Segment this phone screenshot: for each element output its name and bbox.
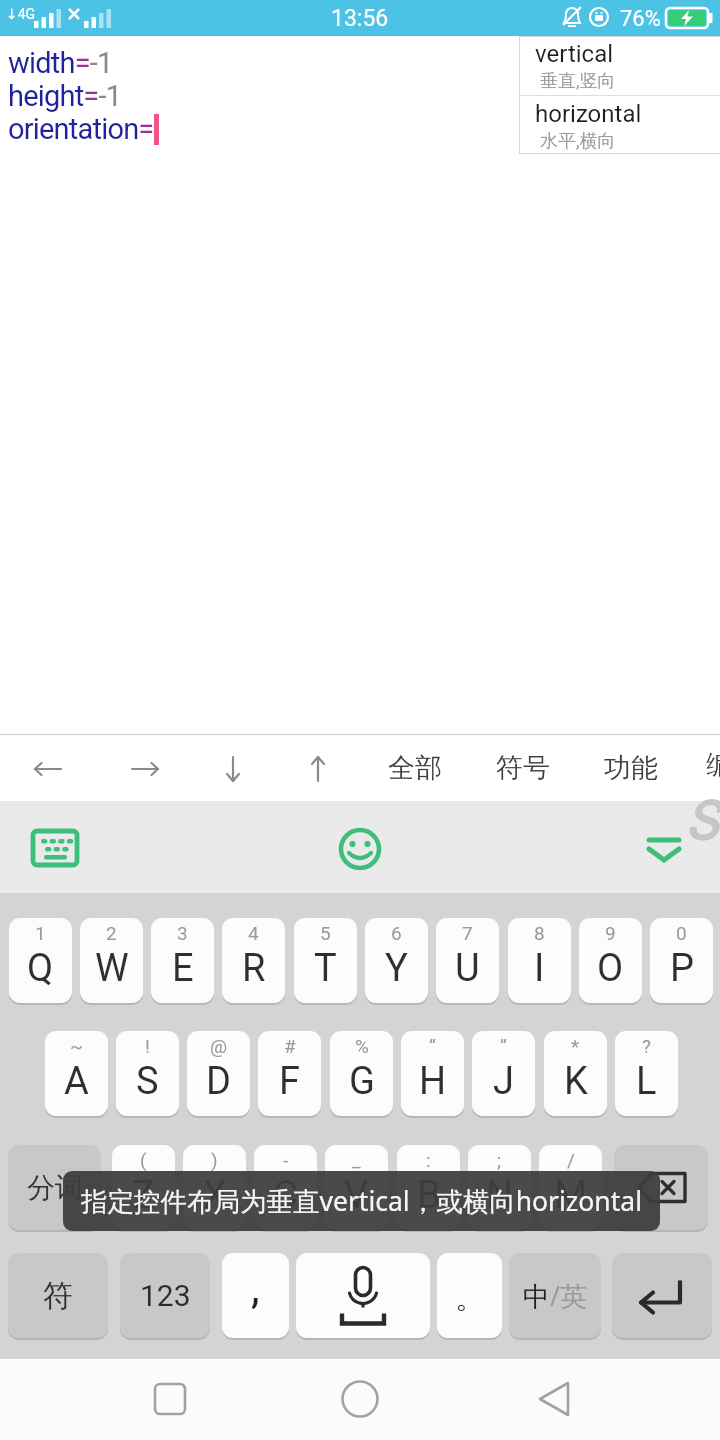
button[interactable]: 0: [650, 918, 713, 1003]
button[interactable]: [612, 1253, 712, 1338]
button[interactable]: 2: [80, 918, 143, 1003]
button[interactable]: 1: [9, 918, 72, 1003]
staticText: G: [349, 1059, 375, 1104]
staticText: R: [242, 946, 266, 991]
button[interactable]: 9: [579, 918, 642, 1003]
staticText: S: [136, 1059, 159, 1104]
staticText: 编: [706, 748, 720, 782]
staticText: 5: [320, 922, 331, 944]
staticText: 123: [140, 1278, 191, 1313]
button[interactable]: ~: [45, 1031, 108, 1116]
button[interactable]: [288, 740, 348, 796]
button[interactable]: [634, 815, 694, 879]
staticText: Z: [132, 1173, 155, 1218]
staticText: #: [284, 1035, 296, 1057]
button[interactable]: 6: [365, 918, 428, 1003]
button[interactable]: [614, 1145, 708, 1230]
staticText: *: [571, 1035, 580, 1057]
button[interactable]: 8: [508, 918, 571, 1003]
staticText: _: [352, 1149, 361, 1171]
button[interactable]: _: [325, 1145, 388, 1230]
staticText: N: [486, 1173, 514, 1218]
staticText: 1: [35, 922, 46, 944]
staticText: 4: [248, 922, 259, 944]
button[interactable]: *: [544, 1031, 607, 1116]
button[interactable]: [296, 1253, 430, 1338]
staticText: ”: [500, 1035, 507, 1057]
button[interactable]: 全部: [380, 742, 450, 794]
staticText: F: [279, 1059, 301, 1104]
button[interactable]: ”: [472, 1031, 535, 1116]
button[interactable]: #: [258, 1031, 321, 1116]
button[interactable]: “: [401, 1031, 464, 1116]
button[interactable]: :: [397, 1145, 460, 1230]
staticText: W: [95, 946, 129, 991]
button[interactable]: 符号: [488, 742, 558, 794]
staticText: 0: [676, 922, 687, 944]
button[interactable]: [525, 1369, 585, 1429]
button[interactable]: [140, 1369, 200, 1429]
button[interactable]: !: [116, 1031, 179, 1116]
button[interactable]: -: [254, 1145, 317, 1230]
staticText: 符: [43, 1277, 73, 1315]
staticText: L: [636, 1059, 657, 1104]
button[interactable]: 。: [437, 1253, 502, 1338]
button[interactable]: [18, 740, 78, 796]
button[interactable]: /: [539, 1145, 602, 1230]
staticText: 。: [455, 1279, 485, 1317]
button[interactable]: 分词: [8, 1145, 101, 1230]
staticText: 分词: [27, 1170, 83, 1205]
button[interactable]: @: [187, 1031, 250, 1116]
staticText: vertical: [535, 40, 614, 68]
button[interactable]: 5: [294, 918, 357, 1003]
staticText: X: [203, 1173, 227, 1218]
staticText: A: [64, 1059, 89, 1104]
staticText: 2: [106, 922, 117, 944]
staticText: T: [314, 946, 337, 991]
staticText: B: [417, 1173, 441, 1218]
staticText: width=-1: [8, 46, 113, 80]
button[interactable]: 123: [120, 1253, 210, 1338]
button[interactable]: %: [330, 1031, 393, 1116]
button[interactable]: ;: [468, 1145, 531, 1230]
button[interactable]: (: [112, 1145, 175, 1230]
button[interactable]: vertical: [519, 36, 720, 95]
button[interactable]: ): [183, 1145, 246, 1230]
staticText: 全部: [388, 751, 442, 785]
staticText: D: [206, 1059, 231, 1104]
button[interactable]: 中/英: [509, 1253, 601, 1338]
button[interactable]: 3: [151, 918, 214, 1003]
button[interactable]: 7: [436, 918, 499, 1003]
button[interactable]: [14, 815, 90, 879]
staticText: /: [567, 1149, 575, 1171]
staticText: 8: [534, 922, 545, 944]
button[interactable]: [115, 740, 175, 796]
staticText: “: [429, 1035, 436, 1057]
button[interactable]: ,: [222, 1253, 289, 1338]
staticText: 9: [605, 922, 616, 944]
staticText: ↓4G: [6, 6, 36, 22]
button[interactable]: 功能: [596, 742, 666, 794]
button[interactable]: 符: [8, 1253, 108, 1338]
staticText: 13:56: [331, 5, 389, 32]
staticText: ;: [497, 1149, 502, 1171]
button[interactable]: ?: [615, 1031, 678, 1116]
staticText: orientation=: [8, 112, 154, 146]
staticText: ,: [251, 1262, 260, 1314]
staticText: Q: [27, 946, 54, 991]
staticText: ?: [642, 1035, 651, 1057]
button[interactable]: 4: [222, 918, 285, 1003]
staticText: 符号: [496, 751, 550, 785]
staticText: P: [670, 946, 694, 991]
button[interactable]: [330, 1369, 390, 1429]
staticText: -: [283, 1149, 289, 1171]
staticText: 中/英: [523, 1277, 588, 1314]
staticText: !: [145, 1035, 150, 1057]
button[interactable]: horizontal: [519, 95, 720, 154]
button[interactable]: [203, 740, 263, 796]
staticText: H: [419, 1059, 447, 1104]
staticText: I: [534, 946, 545, 991]
staticText: @: [210, 1035, 228, 1057]
staticText: ~: [70, 1035, 83, 1057]
button[interactable]: [330, 815, 390, 879]
